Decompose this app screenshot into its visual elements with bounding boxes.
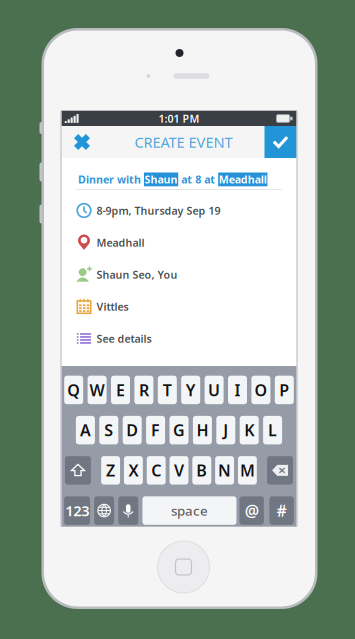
staticText: Shaun Seo, You <box>96 267 177 282</box>
staticText: Dinner with <box>78 172 144 186</box>
staticText: space <box>171 502 208 519</box>
button[interactable]: P <box>275 376 294 404</box>
staticText: A <box>80 419 91 441</box>
button[interactable]: space <box>142 496 236 525</box>
staticText: @ <box>245 500 259 521</box>
staticText: P <box>279 379 289 400</box>
button[interactable]: X <box>124 456 143 485</box>
button[interactable]: S <box>99 416 118 444</box>
button[interactable]: J <box>216 416 235 444</box>
button[interactable]: V <box>169 456 188 485</box>
staticText: See details <box>96 331 151 346</box>
button[interactable]: Q <box>64 376 83 404</box>
button[interactable]: 123 <box>64 496 90 525</box>
button[interactable]: D <box>123 416 142 444</box>
button[interactable]: K <box>240 416 259 444</box>
button[interactable] <box>65 456 91 485</box>
button[interactable]: I <box>228 376 247 404</box>
staticText: L <box>268 419 277 441</box>
staticText: Z <box>106 460 115 481</box>
button[interactable]: Cancel <box>61 126 102 158</box>
button[interactable]: R <box>134 376 153 404</box>
button[interactable]: M <box>238 456 257 485</box>
staticText: W <box>90 379 105 400</box>
staticText: G <box>173 419 185 441</box>
staticText: T <box>163 379 172 400</box>
button[interactable]: F <box>146 416 165 444</box>
staticText: O <box>254 379 267 400</box>
staticText: Y <box>186 379 196 400</box>
staticText: U <box>208 379 220 400</box>
button[interactable]: H <box>193 416 212 444</box>
staticText: Meadhall <box>219 172 267 186</box>
button[interactable]: C <box>147 456 166 485</box>
button[interactable] <box>118 496 138 525</box>
staticText: N <box>218 460 231 481</box>
staticText: B <box>196 460 207 481</box>
staticText: CREATE EVENT <box>134 132 232 152</box>
button[interactable]: O <box>251 376 270 404</box>
button[interactable]: @ <box>239 496 264 525</box>
button[interactable]: G <box>169 416 188 444</box>
button[interactable]: T <box>158 376 177 404</box>
staticText: 8-9pm, Thursday Sep 19 <box>96 203 220 218</box>
staticText: 1:01 PM <box>158 111 199 126</box>
staticText: Vittles <box>96 299 128 314</box>
button[interactable]: N <box>215 456 234 485</box>
button[interactable] <box>94 496 114 525</box>
button[interactable]: Shaun Seo, You <box>61 258 296 290</box>
button[interactable]: Done <box>264 126 296 158</box>
staticText: I <box>234 379 240 400</box>
button[interactable]: A <box>76 416 95 444</box>
button[interactable]: W <box>88 376 107 404</box>
button[interactable] <box>267 456 293 485</box>
staticText: C <box>151 460 161 481</box>
staticText: E <box>116 379 125 400</box>
staticText: F <box>151 419 160 441</box>
staticText: R <box>139 379 149 400</box>
button[interactable]: See details <box>61 322 296 354</box>
button[interactable]: U <box>205 376 224 404</box>
staticText: X <box>128 460 138 481</box>
button[interactable]: E <box>111 376 130 404</box>
staticText: S <box>104 419 113 441</box>
staticText: Q <box>67 379 80 400</box>
staticText: M <box>240 460 255 481</box>
button[interactable]: L <box>263 416 282 444</box>
staticText: V <box>174 460 184 481</box>
staticText: at 8 at <box>178 172 218 186</box>
staticText: D <box>126 419 138 441</box>
staticText: J <box>223 419 228 441</box>
button[interactable]: Meadhall <box>61 226 296 258</box>
staticText: H <box>196 419 208 441</box>
staticText: Shaun <box>145 172 178 186</box>
staticText: Meadhall <box>96 235 144 250</box>
button[interactable]: Z <box>101 456 120 485</box>
button[interactable]: # <box>269 496 294 525</box>
button[interactable]: 8-9pm, Thursday Sep 19 <box>61 194 296 226</box>
staticText: # <box>277 500 287 521</box>
button[interactable]: Vittles <box>61 290 296 322</box>
staticText: 123 <box>65 501 89 520</box>
button[interactable]: Y <box>181 376 200 404</box>
button[interactable]: B <box>192 456 211 485</box>
staticText: K <box>244 419 254 441</box>
